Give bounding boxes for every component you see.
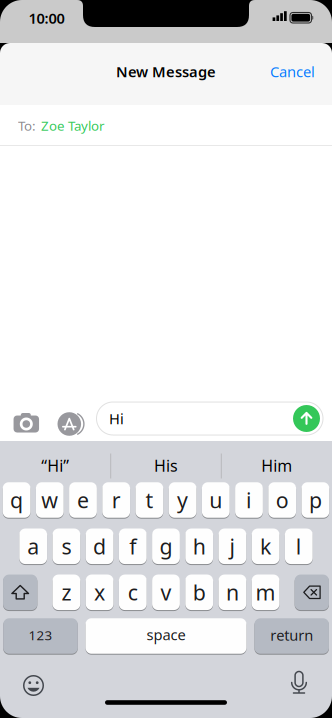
button[interactable]: q <box>3 482 30 518</box>
staticText: c <box>128 578 138 606</box>
button[interactable]: Cancel <box>257 51 327 91</box>
staticText: Hi <box>109 409 124 428</box>
staticText: His <box>154 455 178 476</box>
staticText: j <box>229 532 235 560</box>
staticText: l <box>296 532 302 560</box>
staticText: d <box>93 532 106 560</box>
button[interactable]: Him <box>227 447 327 483</box>
button[interactable]: space <box>85 618 246 654</box>
staticText: New Message <box>116 62 216 81</box>
staticText: k <box>260 532 271 560</box>
staticText: s <box>61 532 71 560</box>
staticText: f <box>129 532 136 560</box>
staticText: r <box>112 486 121 514</box>
staticText: q <box>10 486 23 514</box>
button[interactable]: d <box>86 528 113 564</box>
button[interactable]: a <box>19 528 47 564</box>
button[interactable]: Dictation <box>286 671 312 697</box>
staticText: t <box>145 486 153 514</box>
staticText: Cancel <box>270 62 315 81</box>
button[interactable]: Delete <box>295 574 329 610</box>
staticText: 123 <box>28 626 52 644</box>
staticText: b <box>193 578 206 606</box>
button[interactable]: Apps <box>56 411 90 437</box>
button[interactable]: r <box>102 482 130 518</box>
button[interactable]: v <box>152 574 180 610</box>
button[interactable]: m <box>252 574 279 610</box>
staticText: v <box>160 578 171 606</box>
staticText: i <box>246 486 252 514</box>
button[interactable]: s <box>52 528 80 564</box>
button[interactable]: Message <box>96 402 323 435</box>
button[interactable]: f <box>119 528 147 564</box>
staticText: e <box>77 486 89 514</box>
staticText: space <box>146 625 185 644</box>
staticText: n <box>226 578 239 606</box>
button[interactable]: b <box>185 574 213 610</box>
staticText: Zoe Taylor <box>41 117 105 134</box>
button[interactable]: y <box>169 482 196 518</box>
staticText: m <box>256 578 276 606</box>
button[interactable]: e <box>69 482 97 518</box>
button[interactable]: x <box>86 574 113 610</box>
button[interactable]: i <box>235 482 263 518</box>
button[interactable]: To: <box>0 105 332 145</box>
button[interactable]: “Hi” <box>5 447 105 483</box>
staticText: Him <box>261 455 292 476</box>
button[interactable]: l <box>285 528 313 564</box>
button[interactable]: Camera <box>11 411 41 435</box>
button[interactable]: z <box>52 574 80 610</box>
staticText: h <box>193 532 206 560</box>
button[interactable]: u <box>202 482 230 518</box>
staticText: w <box>41 486 58 514</box>
staticText: a <box>27 532 39 560</box>
button[interactable]: Emoji <box>20 672 46 698</box>
staticText: x <box>94 578 105 606</box>
button[interactable]: t <box>135 482 163 518</box>
button[interactable]: 123 <box>3 618 78 654</box>
staticText: p <box>309 486 322 514</box>
button[interactable]: return <box>254 618 329 654</box>
staticText: g <box>159 532 172 560</box>
staticText: y <box>177 486 188 514</box>
button[interactable]: p <box>301 482 329 518</box>
button[interactable]: k <box>252 528 279 564</box>
button[interactable]: Shift <box>3 574 37 610</box>
button[interactable]: g <box>152 528 180 564</box>
staticText: “Hi” <box>41 455 69 476</box>
button[interactable]: o <box>268 482 296 518</box>
staticText: 10:00 <box>28 8 64 28</box>
button[interactable]: c <box>119 574 147 610</box>
button[interactable]: n <box>218 574 246 610</box>
button[interactable]: j <box>218 528 246 564</box>
button[interactable]: h <box>185 528 213 564</box>
button[interactable]: His <box>116 447 216 483</box>
staticText: z <box>61 578 71 606</box>
button[interactable]: w <box>36 482 64 518</box>
staticText: o <box>276 486 289 514</box>
staticText: u <box>209 486 222 514</box>
staticText: To: <box>18 117 36 134</box>
staticText: return <box>270 625 313 645</box>
button[interactable]: Send <box>293 405 320 432</box>
